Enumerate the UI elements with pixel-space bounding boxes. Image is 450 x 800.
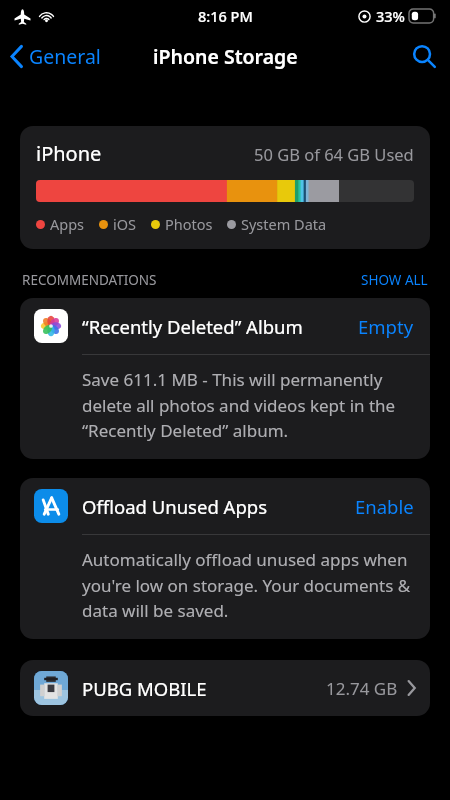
button[interactable]: iPhone [20, 126, 430, 249]
staticText: 50 GB of 64 GB Used [254, 143, 414, 165]
staticText: Offload Unused Apps [82, 494, 268, 519]
button[interactable]: General [0, 37, 111, 76]
staticText: iPhone Storage [153, 43, 298, 70]
staticText: Apps [50, 214, 85, 234]
staticText: SHOW ALL [361, 271, 428, 289]
staticText: RECOMMENDATIONS [22, 271, 157, 289]
staticText: Enable [355, 494, 414, 519]
button[interactable]: Enable [355, 494, 414, 519]
button[interactable]: Search [398, 36, 450, 76]
staticText: Empty [358, 314, 414, 339]
staticText: System Data [241, 214, 327, 234]
staticText: Automatically offload unused apps when y… [82, 548, 412, 622]
staticText: Save 611.1 MB - This will permanently de… [82, 368, 412, 442]
staticText: 12.74 GB [326, 677, 398, 700]
staticText: “Recently Deleted” Album [82, 314, 303, 339]
staticText: iPhone [36, 140, 102, 167]
button[interactable]: Empty [358, 314, 414, 339]
button[interactable]: Offload Unused Apps [20, 478, 430, 639]
button[interactable]: SHOW ALL [361, 271, 428, 289]
staticText: 33% [376, 6, 405, 26]
staticText: iOS [113, 214, 137, 234]
staticText: 8:16 PM [198, 6, 253, 26]
staticText: Photos [165, 214, 213, 234]
button[interactable]: “Recently Deleted” Album [20, 298, 430, 459]
staticText: PUBG MOBILE [82, 676, 207, 701]
button[interactable]: PUBG MOBILE [20, 660, 430, 716]
staticText: General [29, 43, 101, 70]
